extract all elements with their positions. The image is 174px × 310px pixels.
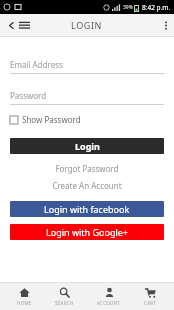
staticText: 39% <box>123 4 133 11</box>
button[interactable]: Show Password <box>10 112 81 127</box>
button[interactable]: HOME <box>11 285 38 308</box>
staticText: Show Password <box>22 114 81 125</box>
button[interactable]: Email Address <box>10 59 164 74</box>
staticText: Create An Account <box>52 180 122 191</box>
button[interactable]: Password <box>10 90 164 105</box>
staticText: 8:42 p.m. <box>142 3 171 12</box>
staticText: CART <box>144 300 157 306</box>
button[interactable]: Create An Account <box>10 180 164 191</box>
button[interactable]: Back and menu <box>5 18 32 33</box>
staticText: SEARCH <box>55 300 74 306</box>
staticText: Forgot Password <box>55 163 119 174</box>
button[interactable]: Login with facebook <box>10 201 164 217</box>
staticText: Email Address <box>10 59 63 70</box>
staticText: ACCOUNT <box>97 300 121 306</box>
button[interactable]: CART <box>138 285 163 308</box>
button[interactable]: Login <box>10 138 164 154</box>
staticText: Login <box>75 140 100 152</box>
button[interactable]: Login with Google+ <box>10 224 164 240</box>
button[interactable]: More options <box>158 17 174 34</box>
staticText: Login with facebook <box>44 203 130 215</box>
staticText: Password <box>10 90 47 101</box>
staticText: Login with Google+ <box>46 226 128 238</box>
staticText: HOME <box>17 300 32 306</box>
button[interactable]: Forgot Password <box>10 163 164 174</box>
staticText: LOGIN <box>71 19 103 31</box>
button[interactable]: SEARCH <box>49 285 80 308</box>
button[interactable]: ACCOUNT <box>91 285 127 308</box>
